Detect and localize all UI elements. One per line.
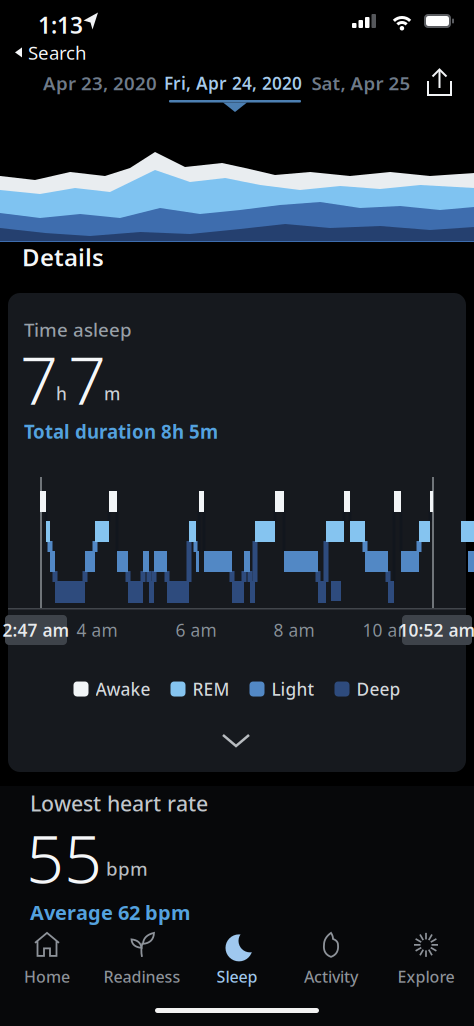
staticText: m xyxy=(104,382,120,405)
button[interactable]: Previous day xyxy=(43,71,157,95)
button[interactable]: Back to Search xyxy=(15,40,87,65)
button[interactable]: Expand details xyxy=(223,735,249,747)
staticText: 7 xyxy=(68,334,106,423)
staticText: 55 xyxy=(26,813,102,901)
staticText: Average 62 bpm xyxy=(30,899,191,926)
staticText: 4 am xyxy=(76,618,117,641)
button[interactable]: Sleep xyxy=(192,929,282,987)
staticText: bpm xyxy=(106,856,148,881)
staticText: Apr 23, 2020 xyxy=(43,71,157,95)
staticText: Deep xyxy=(356,677,400,700)
staticText: h xyxy=(56,382,67,405)
staticText: Details xyxy=(22,241,104,273)
staticText: 7 xyxy=(20,334,58,423)
button[interactable]: Home xyxy=(2,929,92,987)
staticText: 10 am xyxy=(362,618,413,641)
staticText: 6 am xyxy=(175,618,216,641)
staticText: Awake xyxy=(95,677,150,700)
staticText: Lowest heart rate xyxy=(30,789,208,817)
button[interactable]: Next day xyxy=(311,71,410,95)
button[interactable]: Readiness xyxy=(97,929,187,987)
staticText: Home xyxy=(24,966,70,987)
staticText: Total duration 8h 5m xyxy=(24,419,218,444)
button[interactable]: Fri, Apr 24, 2020 xyxy=(164,71,302,94)
staticText: Time asleep xyxy=(24,317,132,342)
staticText: Light xyxy=(271,677,314,700)
staticText: Readiness xyxy=(103,966,180,987)
staticText: Sat, Apr 25 xyxy=(311,71,410,95)
button[interactable]: Explore xyxy=(381,929,471,987)
button[interactable]: Activity xyxy=(286,929,376,987)
staticText: Explore xyxy=(397,966,454,987)
staticText: 2:47 am xyxy=(2,618,69,641)
staticText: Sleep xyxy=(216,966,257,987)
staticText: Fri, Apr 24, 2020 xyxy=(164,71,302,94)
staticText: 8 am xyxy=(273,618,314,641)
staticText: REM xyxy=(192,677,229,700)
button[interactable]: Share xyxy=(0,0,474,1026)
staticText: 10:52 am xyxy=(398,618,474,641)
staticText: Activity xyxy=(304,966,358,987)
staticText: 1:13 xyxy=(38,10,83,40)
staticText: Search xyxy=(28,40,87,65)
